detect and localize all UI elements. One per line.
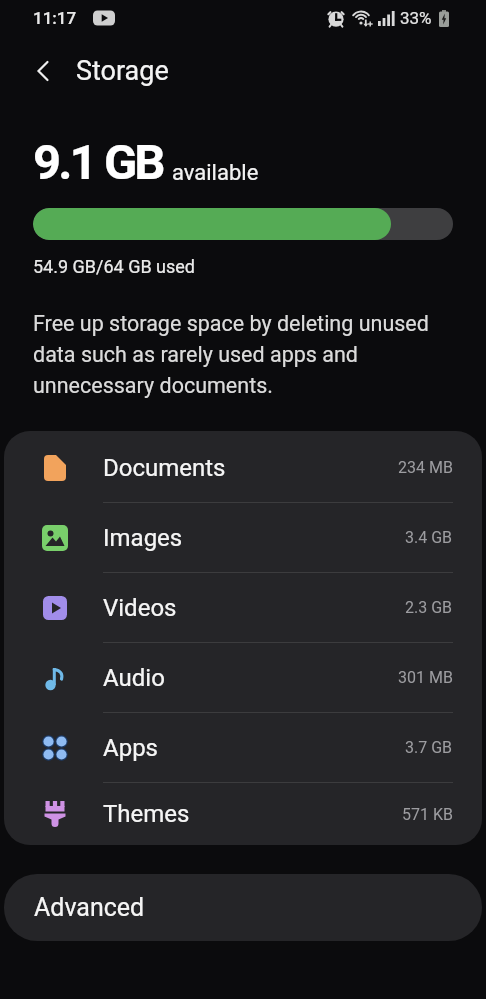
button[interactable]: Images [4,503,482,572]
staticText: 234 MB [398,458,453,477]
staticText: Free up storage space by deleting unused… [33,311,429,398]
staticText: 54.9 GB/64 GB used [33,256,196,277]
staticText: Advanced [34,893,145,922]
staticText: Themes [103,800,190,828]
staticText: 3.4 GB [405,528,453,547]
staticText: Audio [103,664,165,692]
button[interactable]: Videos [4,573,482,642]
button[interactable]: Themes [4,783,482,845]
staticText: 2.3 GB [405,598,453,617]
staticText: 33% [400,8,432,28]
button[interactable]: Documents [4,433,482,502]
staticText: Apps [103,734,158,762]
staticText: 9.1 GB [33,134,163,191]
staticText: Images [103,524,183,552]
staticText: 571 KB [402,805,453,824]
staticText: 11:17 [33,8,77,28]
button[interactable]: Audio [4,643,482,712]
staticText: Videos [103,594,177,622]
staticText: 3.7 GB [405,738,453,757]
button[interactable]: Apps [4,713,482,782]
button[interactable] [16,43,72,99]
staticText: available [172,160,259,186]
button[interactable]: Advanced [4,874,482,941]
staticText: Storage [76,55,169,87]
staticText: 301 MB [398,668,453,687]
staticText: Documents [103,454,226,482]
